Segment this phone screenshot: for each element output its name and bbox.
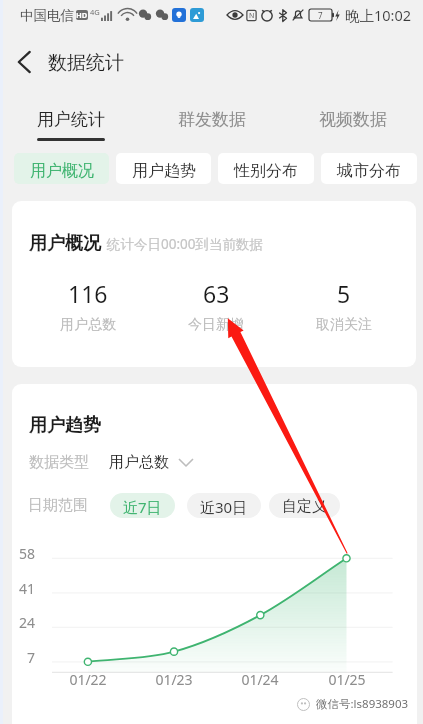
staticText: 01/23	[144, 670, 204, 689]
button[interactable]: 近7日	[110, 493, 175, 518]
button[interactable]: 自定义	[269, 493, 340, 518]
staticText: 用户总数	[109, 453, 169, 472]
staticText: 24	[12, 613, 35, 632]
staticText: 用户概况	[29, 232, 101, 255]
staticText: 01/24	[230, 670, 290, 689]
button[interactable]: 性别分布	[218, 153, 314, 184]
button[interactable]: 116	[24, 278, 152, 334]
staticText: 近30日	[200, 497, 248, 517]
staticText: 01/22	[58, 670, 118, 689]
staticText: 41	[12, 579, 35, 598]
staticText: 数据统计	[48, 51, 124, 75]
staticText: 用户概况	[30, 161, 94, 181]
staticText: 取消关注	[316, 316, 372, 334]
staticText: 中国电信	[20, 7, 74, 24]
staticText: 用户趋势	[29, 414, 101, 437]
button[interactable]: 群发数据	[141, 93, 282, 149]
staticText: N	[249, 11, 255, 21]
button[interactable]: 近30日	[187, 493, 261, 518]
staticText: 微信号:ls8938903	[316, 696, 409, 712]
staticText: 城市分布	[337, 161, 401, 181]
staticText: 58	[12, 544, 35, 563]
button[interactable]: Back	[0, 30, 48, 93]
staticText: 晚上10:02	[345, 5, 412, 25]
staticText: 用户统计	[37, 109, 105, 130]
button[interactable]: 用户趋势	[116, 153, 211, 184]
staticText: 视频数据	[319, 109, 387, 130]
staticText: 7	[12, 648, 35, 667]
staticText: 今日新增	[188, 316, 244, 334]
button[interactable]: 用户总数	[109, 453, 193, 472]
staticText: 116	[68, 278, 108, 309]
staticText: 4G	[90, 7, 100, 17]
staticText: 用户趋势	[132, 161, 196, 181]
staticText: 统计今日00:00到当前数据	[107, 235, 264, 253]
staticText: 近7日	[123, 497, 162, 517]
button[interactable]: 63	[152, 278, 280, 334]
staticText: 日期范围	[28, 496, 88, 515]
staticText: 63	[203, 278, 230, 309]
staticText: 01/25	[317, 670, 377, 689]
staticText: 性别分布	[234, 161, 298, 181]
staticText: HD	[76, 10, 88, 20]
button[interactable]: 用户概况	[14, 153, 109, 184]
staticText: 群发数据	[178, 109, 246, 130]
staticText: 自定义	[282, 497, 327, 516]
staticText: 5	[337, 278, 351, 309]
staticText: 用户总数	[60, 316, 116, 334]
staticText: 数据类型	[29, 453, 89, 472]
button[interactable]: 城市分布	[321, 153, 417, 184]
button[interactable]: 用户统计	[0, 93, 141, 149]
button[interactable]: 视频数据	[282, 93, 423, 149]
staticText: 7	[318, 10, 323, 21]
button[interactable]: 5	[280, 278, 408, 334]
